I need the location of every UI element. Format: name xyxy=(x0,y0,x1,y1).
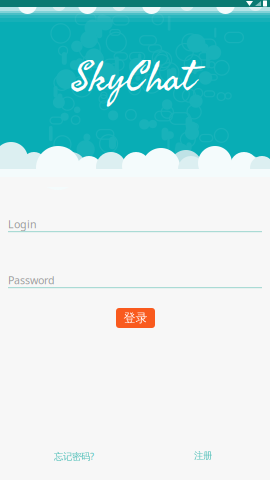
staticText: 忘记密码? xyxy=(54,450,94,462)
staticText: 登录 xyxy=(123,311,147,325)
staticText: 注册 xyxy=(194,450,212,461)
button[interactable]: 登录 xyxy=(116,308,155,328)
staticText: SkyChat xyxy=(71,41,194,113)
staticText: Login xyxy=(8,217,37,231)
button[interactable]: 注册 xyxy=(194,450,212,461)
button[interactable]: 忘记密码? xyxy=(54,450,94,462)
staticText: Password xyxy=(8,273,55,287)
